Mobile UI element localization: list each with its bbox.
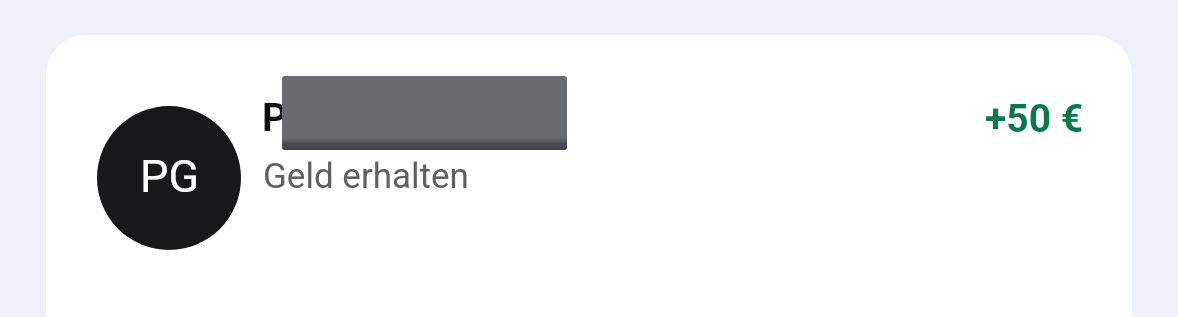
other: Kontaktbild PG [97, 106, 241, 250]
staticText: Paul G [262, 95, 377, 141]
staticText: Geld erhalten [263, 156, 469, 197]
button[interactable]: Kontaktbild PG [46, 35, 1132, 317]
staticText: PG [140, 150, 200, 203]
staticText: +50 € [985, 96, 1084, 142]
